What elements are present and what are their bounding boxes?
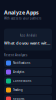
button[interactable]: Analytics: [4, 68, 52, 76]
button[interactable]: Tracking: [4, 86, 52, 94]
staticText: Analyze Apps: [4, 9, 39, 16]
staticText: What do you want with us?: [4, 40, 52, 45]
button[interactable]: Connections: [4, 77, 52, 85]
staticText: Analytics: [13, 70, 24, 74]
staticText: App Analysis: [19, 34, 36, 37]
staticText: Recent Analyses: [4, 53, 27, 57]
staticText: Tracking: [13, 88, 23, 92]
button[interactable]: Reports: [4, 95, 52, 100]
staticText: Connections: [13, 79, 31, 83]
staticText: Reports: [13, 97, 24, 100]
staticText: Notifications: [13, 61, 30, 65]
button[interactable]: Notifications: [4, 59, 52, 67]
staticText: With access to your partners: [4, 17, 41, 20]
